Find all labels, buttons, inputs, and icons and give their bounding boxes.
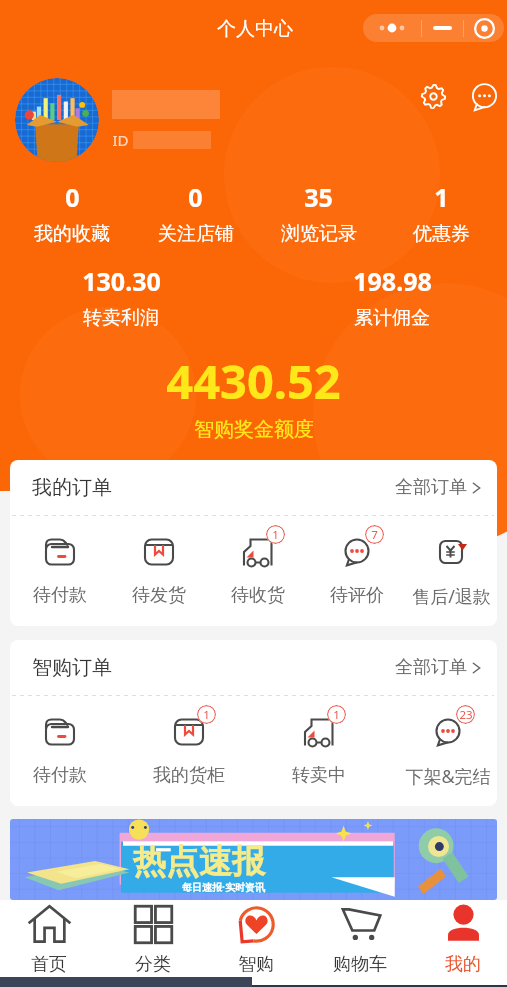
button[interactable]: 全部订单 bbox=[385, 468, 497, 507]
staticText: 转卖利润 bbox=[83, 306, 159, 330]
staticText: 1 bbox=[272, 527, 279, 543]
button[interactable]: 198.98 bbox=[281, 264, 503, 330]
staticText: 4430.52 bbox=[166, 349, 341, 413]
button[interactable]: 23 bbox=[398, 696, 497, 806]
button[interactable]: 分类 bbox=[101, 900, 205, 987]
staticText: 累计佣金 bbox=[354, 306, 430, 330]
button[interactable]: 130.30 bbox=[10, 264, 232, 330]
staticText: 下架&完结 bbox=[405, 764, 491, 789]
staticText: 全部订单 bbox=[395, 656, 467, 679]
button[interactable]: Settings bbox=[413, 76, 453, 116]
staticText: 7 bbox=[371, 527, 378, 543]
staticText: 智购 bbox=[238, 953, 274, 976]
staticText: 我的收藏 bbox=[34, 222, 110, 246]
button[interactable]: Minimize bbox=[422, 14, 463, 42]
button[interactable]: 首页 bbox=[0, 900, 101, 987]
staticText: 198.98 bbox=[353, 264, 432, 298]
button[interactable]: 购物车 bbox=[308, 900, 412, 987]
staticText: 我的订单 bbox=[32, 475, 112, 500]
button[interactable]: 售后/退款 bbox=[406, 516, 497, 626]
button[interactable]: 待付款 bbox=[10, 516, 109, 626]
staticText: ID bbox=[112, 130, 129, 150]
staticText: 全部订单 bbox=[395, 476, 467, 499]
staticText: 个人中心 bbox=[217, 17, 293, 41]
button[interactable]: 待付款 bbox=[10, 696, 109, 806]
button[interactable]: 1 bbox=[139, 696, 238, 806]
staticText: 23 bbox=[459, 707, 473, 723]
staticText: 待付款 bbox=[33, 764, 87, 787]
button[interactable]: 智购 bbox=[204, 900, 308, 987]
button[interactable]: 全部订单 bbox=[385, 648, 497, 687]
staticText: 1 bbox=[434, 180, 449, 214]
staticText: 售后/退款 bbox=[412, 584, 491, 609]
staticText: 0 bbox=[65, 180, 80, 214]
button[interactable]: 7 bbox=[307, 516, 406, 626]
staticText: 我的货柜 bbox=[153, 764, 225, 787]
button[interactable]: More bbox=[363, 14, 421, 42]
staticText: 优惠券 bbox=[413, 222, 470, 246]
staticText: 35 bbox=[304, 180, 333, 214]
staticText: 0 bbox=[188, 180, 203, 214]
button[interactable]: Close bbox=[464, 14, 504, 42]
staticText: 分类 bbox=[135, 953, 171, 976]
staticText: 我的 bbox=[445, 953, 481, 976]
staticText: 转卖中 bbox=[292, 764, 346, 787]
staticText: 待评价 bbox=[330, 584, 384, 607]
button[interactable]: 1 bbox=[380, 180, 503, 246]
staticText: 待收货 bbox=[231, 584, 285, 607]
staticText: 待付款 bbox=[33, 584, 87, 607]
button[interactable]: Avatar bbox=[15, 78, 99, 162]
staticText: 待发货 bbox=[132, 584, 186, 607]
staticText: 浏览记录 bbox=[281, 222, 357, 246]
button[interactable]: 1 bbox=[208, 516, 307, 626]
button[interactable]: Customer service bbox=[464, 76, 504, 116]
button[interactable]: 热点速报 banner bbox=[10, 819, 497, 900]
staticText: 关注店铺 bbox=[158, 222, 234, 246]
button[interactable]: 待发货 bbox=[109, 516, 208, 626]
button[interactable]: 我的 bbox=[411, 900, 507, 987]
staticText: 热点速报 bbox=[133, 841, 265, 883]
button[interactable]: 0 bbox=[134, 180, 257, 246]
staticText: 智购奖金额度 bbox=[194, 417, 314, 442]
staticText: 首页 bbox=[31, 953, 67, 976]
staticText: 每日速报·实时资讯 bbox=[182, 880, 265, 894]
staticText: 130.30 bbox=[82, 264, 161, 298]
button[interactable]: 1 bbox=[269, 696, 368, 806]
button[interactable]: 0 bbox=[10, 180, 134, 246]
staticText: 1 bbox=[333, 707, 340, 723]
staticText: 智购订单 bbox=[32, 655, 112, 680]
button[interactable]: 35 bbox=[257, 180, 380, 246]
staticText: 购物车 bbox=[333, 953, 387, 976]
staticText: 1 bbox=[203, 707, 210, 723]
